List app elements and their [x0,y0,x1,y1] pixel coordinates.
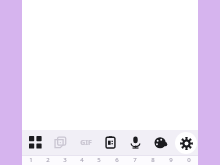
staticText: 2 [46,156,50,164]
button[interactable]: Voice input [123,130,148,155]
staticText: 1 [29,156,33,164]
staticText: 9 [169,156,173,164]
button[interactable]: 9 [162,156,180,165]
button[interactable]: 5 [90,156,108,165]
staticText: GIF [80,138,92,148]
button[interactable]: Keyboard modes [22,130,48,155]
staticText: 7 [133,156,137,164]
staticText: 8 [151,156,155,164]
staticText: 3 [63,156,67,164]
button[interactable]: 6 [108,156,126,165]
button[interactable]: 8 [144,156,162,165]
button[interactable]: Stickers [48,130,73,155]
staticText: 5 [97,156,101,164]
button[interactable]: 1 [22,156,39,165]
button[interactable]: 2 [39,156,56,165]
staticText: 6 [115,156,119,164]
button[interactable]: 4 [73,156,90,165]
button[interactable]: Clipboard [98,130,123,155]
staticText: 0 [187,156,191,164]
button[interactable]: Themes [148,130,173,155]
button[interactable]: GIF [73,130,98,155]
button[interactable]: 3 [56,156,73,165]
button[interactable]: 0 [180,156,198,165]
button[interactable]: Settings [173,130,198,155]
button[interactable]: 7 [126,156,144,165]
staticText: 4 [80,156,84,164]
